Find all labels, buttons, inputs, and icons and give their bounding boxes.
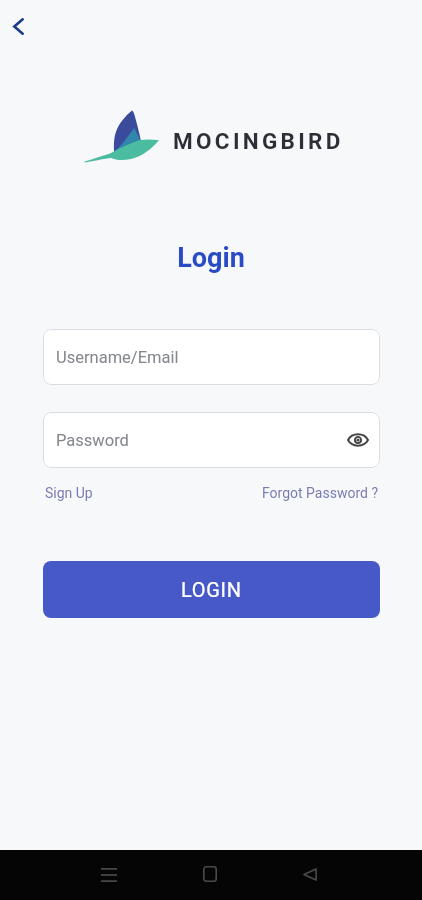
button[interactable]: Back [1, 9, 35, 43]
staticText: MOCINGBIRD [173, 128, 344, 154]
staticText: Password [56, 431, 129, 450]
staticText: LOGIN [181, 578, 242, 601]
button[interactable]: Recent apps [91, 857, 127, 893]
button[interactable]: Username/Email [43, 329, 380, 385]
button[interactable]: LOGIN [43, 561, 380, 618]
staticText: Login [177, 242, 245, 274]
button[interactable]: Home [192, 856, 228, 892]
button[interactable]: Password [43, 412, 380, 468]
button[interactable]: Back [292, 856, 328, 892]
staticText: Username/Email [56, 348, 179, 367]
button[interactable]: Forgot Password ? [262, 485, 379, 501]
button[interactable]: Show password [342, 424, 374, 456]
button[interactable]: Sign Up [45, 485, 93, 501]
